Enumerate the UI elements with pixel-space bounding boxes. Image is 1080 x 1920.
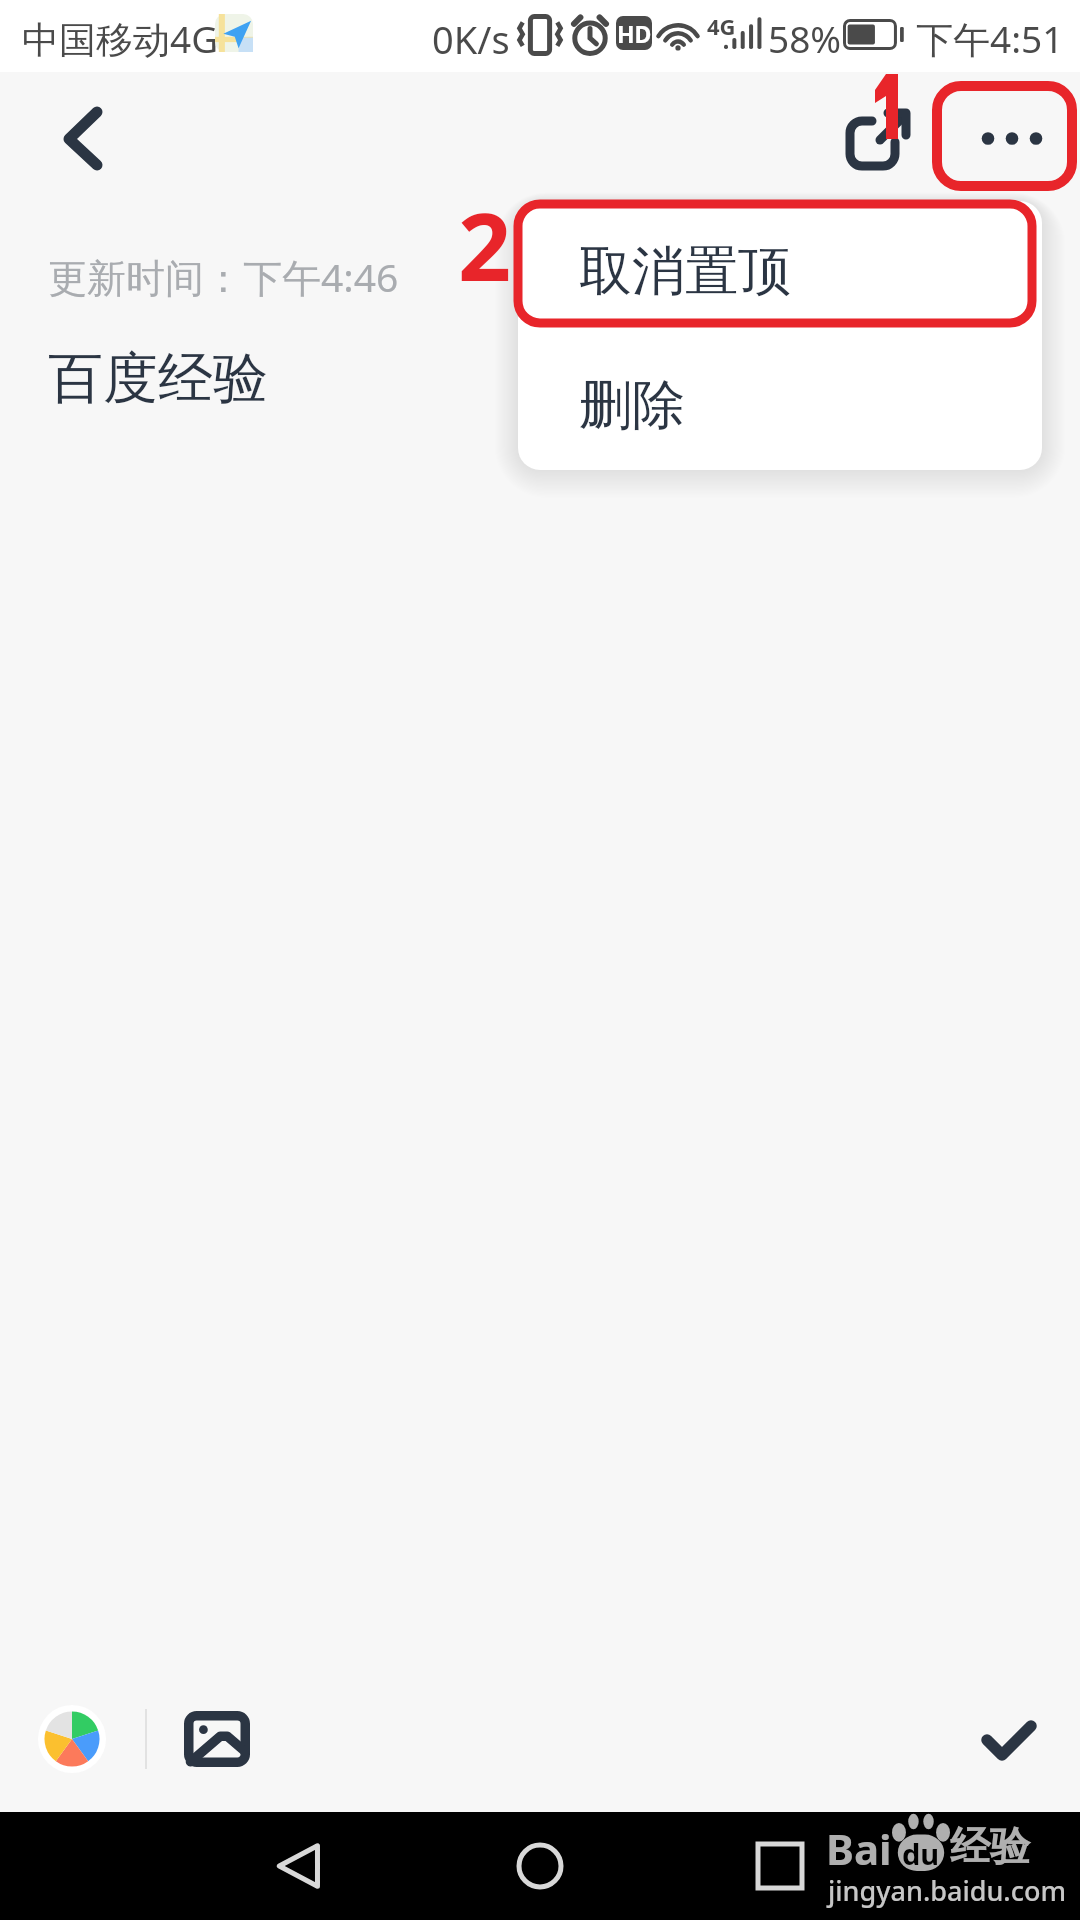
- staticText: 删除: [579, 372, 685, 439]
- staticText: 4G: [707, 11, 736, 41]
- staticText: 中国移动4G: [22, 13, 219, 64]
- button[interactable]: More options: [937, 86, 1073, 186]
- staticText: HD: [617, 18, 652, 49]
- button[interactable]: Back: [255, 1812, 345, 1920]
- button[interactable]: Recent apps: [735, 1812, 825, 1920]
- staticText: 取消置顶: [579, 238, 791, 305]
- button[interactable]: 删除: [518, 341, 1042, 470]
- staticText: 下午4:51: [916, 13, 1064, 64]
- staticText: 2: [458, 182, 512, 309]
- button[interactable]: Open in new window: [820, 92, 920, 192]
- button[interactable]: Insert image: [167, 1689, 267, 1789]
- button[interactable]: Text colour: [22, 1689, 122, 1789]
- button[interactable]: Home: [495, 1812, 585, 1920]
- staticText: Bai: [826, 1820, 892, 1872]
- staticText: 0K/s: [432, 13, 510, 65]
- staticText: du: [902, 1834, 940, 1873]
- staticText: jingyan.baidu.com: [828, 1872, 1067, 1909]
- staticText: 更新时间：下午4:46: [48, 250, 399, 303]
- staticText: 百度经验: [48, 344, 268, 413]
- button[interactable]: Done: [959, 1690, 1059, 1790]
- button[interactable]: 取消置顶: [518, 201, 1042, 341]
- button[interactable]: Back: [14, 58, 124, 168]
- staticText: 58%: [768, 13, 842, 63]
- staticText: 经验: [950, 1821, 1030, 1871]
